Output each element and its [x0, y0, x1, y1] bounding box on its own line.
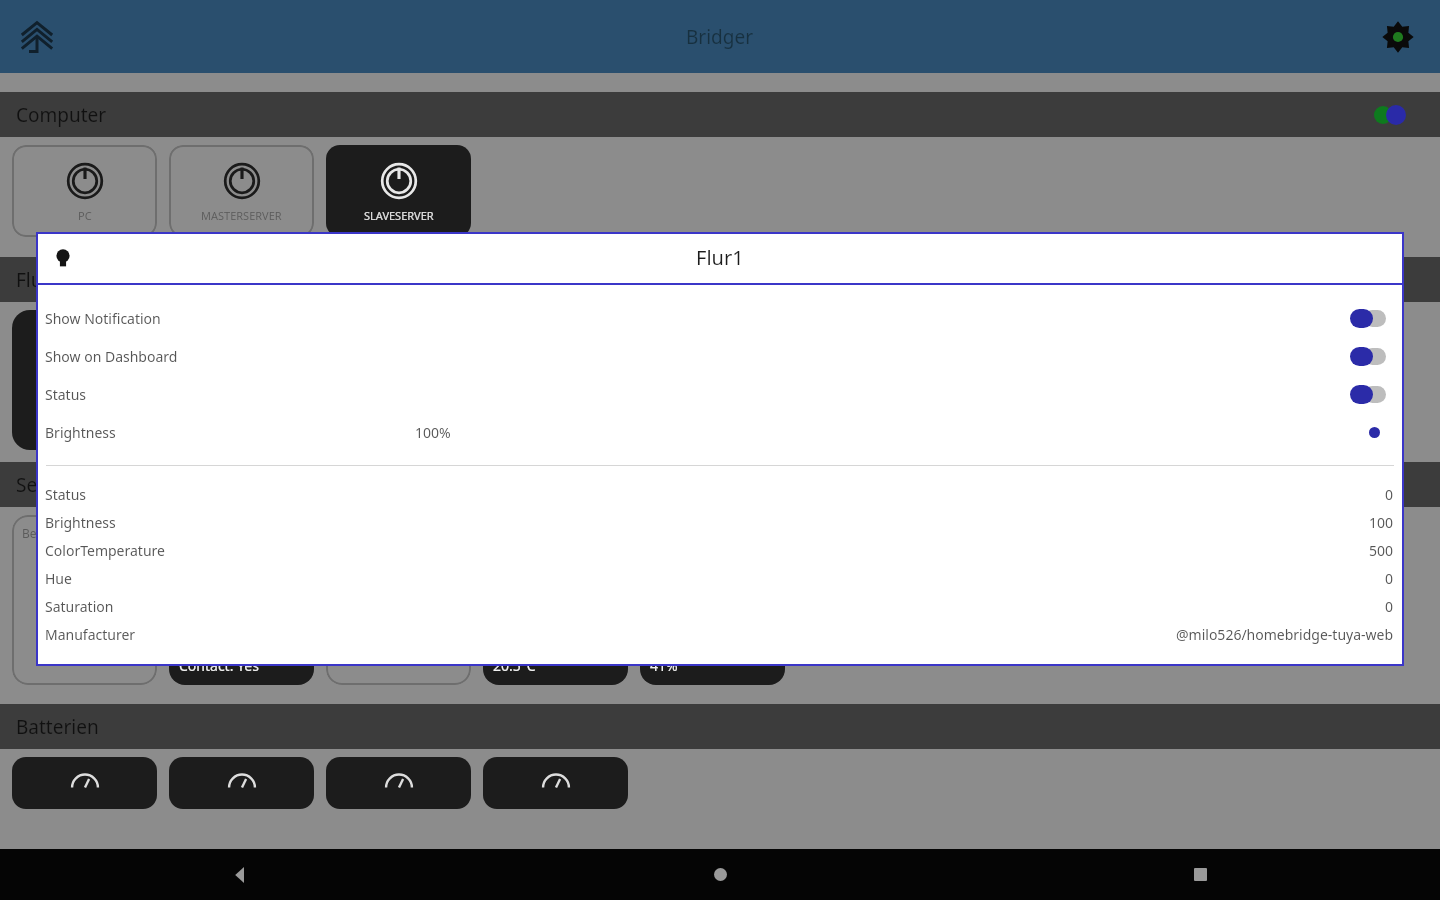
button[interactable]: Brightness	[36, 508, 1404, 536]
button[interactable]: Hue	[36, 564, 1404, 592]
button[interactable]: Show on Dashboard	[36, 337, 1404, 375]
button[interactable]: Flur	[0, 257, 1440, 302]
staticText: Sensoren	[16, 472, 100, 498]
button[interactable]: PC	[12, 145, 157, 237]
button[interactable]: Fenster	[169, 515, 314, 685]
button[interactable]: Status	[36, 480, 1404, 508]
staticText: PC	[78, 208, 92, 223]
staticText: Show Notification	[45, 309, 161, 328]
button[interactable]: Show Notification	[36, 299, 1404, 337]
staticText: 100%	[415, 423, 451, 442]
staticText: Brightness	[45, 513, 116, 532]
button[interactable]: ColorTemperature	[36, 536, 1404, 564]
button[interactable]: Settings	[1378, 17, 1418, 57]
staticText: 100	[1369, 513, 1394, 532]
staticText: Flur1	[696, 244, 744, 271]
staticText: MASTERSERVER	[201, 208, 282, 223]
staticText: 41%	[650, 656, 678, 675]
button[interactable]: Brightness	[36, 413, 1404, 451]
staticText: Batterien	[16, 714, 99, 740]
staticText: 0	[1385, 569, 1394, 588]
button[interactable]: Bewegungsmelder Motion	[326, 515, 471, 685]
button[interactable]: Back	[0, 849, 480, 900]
staticText: Brightness	[45, 423, 116, 442]
button[interactable]: Bewegungssensor	[12, 515, 157, 685]
button[interactable]: Saturation	[36, 592, 1404, 620]
button[interactable]: Manufacturer	[36, 620, 1404, 648]
staticText: Hue	[45, 569, 72, 588]
staticText: Bridger	[686, 24, 754, 50]
button[interactable]: Sensoren	[0, 462, 1440, 507]
button[interactable]: SLAVESERVER	[326, 145, 471, 237]
staticText: Manufacturer	[45, 625, 136, 644]
button[interactable]: Status	[36, 375, 1404, 413]
staticText: @milo526/homebridge-tuya-web	[1176, 625, 1394, 644]
staticText: Bewegungssensor	[22, 525, 126, 541]
staticText: Flur	[16, 267, 51, 293]
staticText: 0	[1385, 597, 1394, 616]
button[interactable]: Thermostat	[640, 515, 785, 685]
button[interactable]: Thermostat	[483, 515, 628, 685]
button[interactable]	[326, 757, 471, 809]
staticText: ColorTemperature	[45, 541, 165, 560]
button[interactable]	[483, 757, 628, 809]
staticText: Status	[45, 385, 87, 404]
staticText: Status	[45, 485, 87, 504]
button[interactable]	[12, 757, 157, 809]
staticText: SLAVESERVER	[364, 208, 434, 223]
button[interactable]: Home	[14, 14, 60, 60]
button[interactable]: Computer	[0, 92, 1440, 137]
staticText: Contact: Yes	[179, 656, 259, 675]
staticText: Show on Dashboard	[45, 347, 178, 366]
staticText: Saturation	[45, 597, 114, 616]
button[interactable]	[169, 757, 314, 809]
button[interactable]: MASTERSERVER	[169, 145, 314, 237]
button[interactable]: Home	[480, 849, 960, 900]
staticText: 20.5°C	[493, 656, 536, 675]
staticText: 500	[1369, 541, 1394, 560]
button[interactable]	[12, 310, 157, 450]
button[interactable]	[169, 310, 314, 450]
staticText: 0	[1385, 485, 1394, 504]
staticText: Computer	[16, 102, 107, 128]
button[interactable]: Recents	[960, 849, 1440, 900]
